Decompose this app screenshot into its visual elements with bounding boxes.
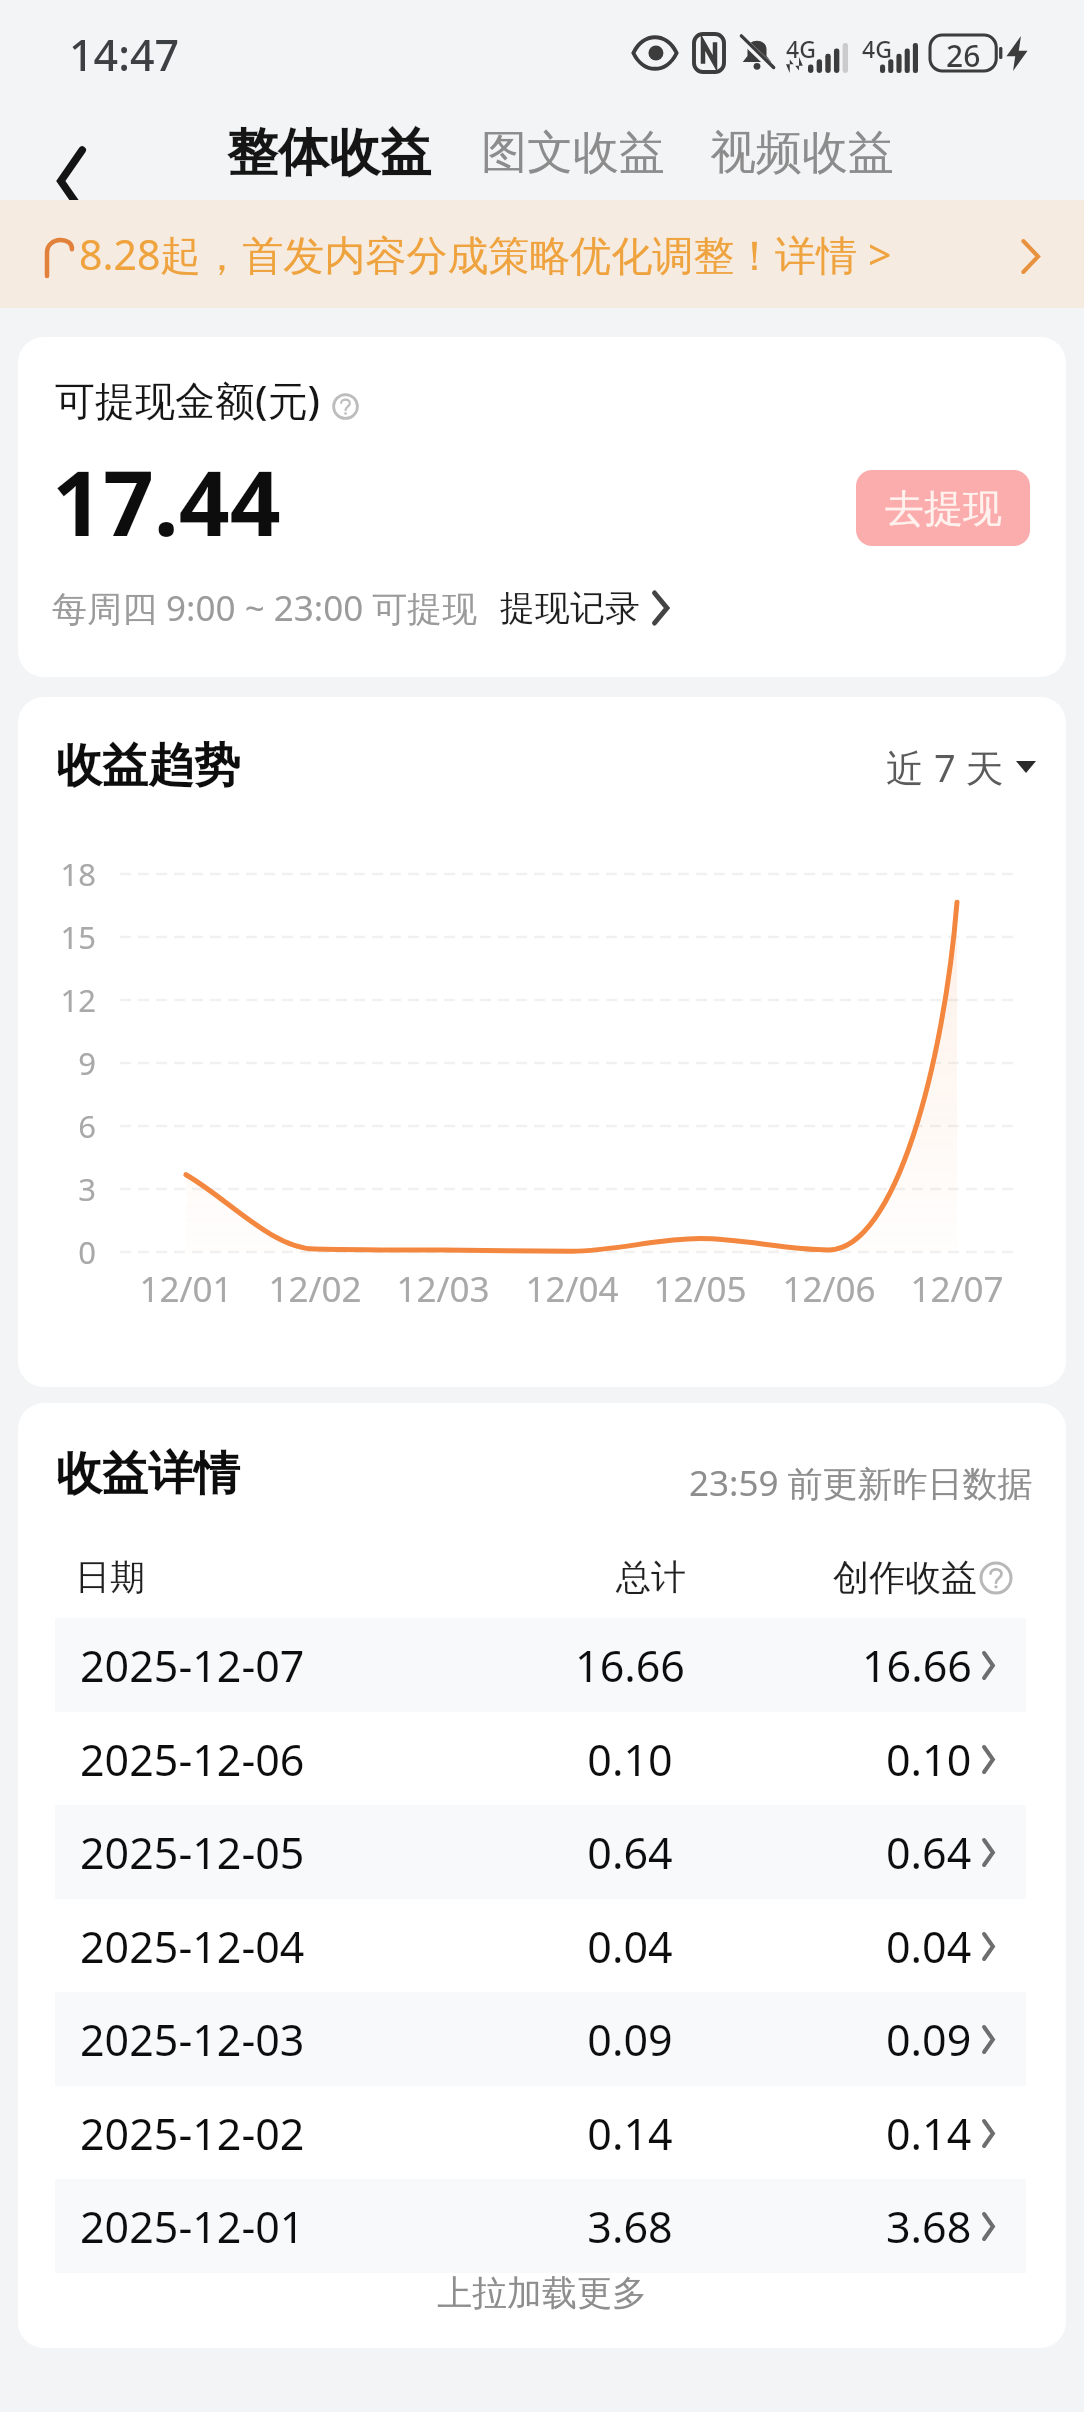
staticText: 图文收益 [481,124,665,182]
button[interactable]: 视频收益 [687,105,919,200]
button[interactable]: 近 7 天 [886,741,1036,793]
button[interactable]: 2025-12-04 [55,1899,1026,1993]
button[interactable]: 提现记录 [500,586,669,630]
staticText: 12/07 [867,1265,1047,1313]
button[interactable]: 2025-12-01 [55,2179,1026,2273]
staticText: 26 [946,35,981,71]
button[interactable]: 2025-12-03 [55,1992,1026,2086]
staticText: 3 [18,1168,96,1210]
button[interactable]: 2025-12-07 [55,1618,1026,1712]
staticText: 总计 [561,1555,741,1599]
staticText: 16.66 [862,1636,972,1695]
staticText: 2025-12-03 [80,2010,305,2069]
staticText: 4G [862,33,892,64]
staticText: 提现记录 [500,586,640,630]
staticText: 12/04 [482,1265,662,1313]
button[interactable]: 2025-12-06 [55,1712,1026,1806]
staticText: 收益趋势 [56,737,240,795]
button[interactable]: 2025-12-05 [55,1805,1026,1899]
staticText: 12/02 [225,1265,405,1313]
staticText: 0.09 [886,2010,972,2069]
staticText: 0.09 [540,2010,720,2069]
staticText: 2025-12-05 [80,1823,305,1882]
staticText: 0.10 [540,1730,720,1789]
button[interactable]: 8.28起，首发内容分成策略优化调整！详情 > [0,200,1084,308]
staticText: 日期 [75,1555,145,1599]
staticText: 创作收益 [833,1555,977,1600]
staticText: 去提现 [885,484,1002,533]
staticText: 6 [18,1105,96,1147]
staticText: 2025-12-07 [80,1636,305,1695]
staticText: 0.10 [886,1730,972,1789]
staticText: 23:59 前更新昨日数据 [689,1459,1033,1507]
staticText: 0.64 [886,1823,972,1882]
staticText: 0.14 [886,2104,972,2163]
staticText: 9 [18,1042,96,1084]
staticText: 4G [786,33,816,64]
staticText: 整体收益 [227,121,431,185]
staticText: 视频收益 [710,124,894,182]
staticText: 0.64 [540,1823,720,1882]
staticText: 3.68 [540,2197,720,2256]
staticText: 收益详情 [56,1445,240,1503]
staticText: 3.68 [886,2197,972,2256]
button[interactable]: 图文收益 [451,105,687,200]
button[interactable]: 整体收益 [207,105,451,200]
button[interactable]: 去提现 [856,470,1030,546]
staticText: 上拉加载更多 [18,2271,1066,2315]
staticText: 0.14 [540,2104,720,2163]
staticText: 12/03 [353,1265,533,1313]
staticText: 近 7 天 [886,741,1004,793]
staticText: 16.66 [540,1636,720,1695]
button[interactable]: Back [14,107,124,200]
staticText: 8.28起，首发内容分成策略优化调整！详情 > [79,226,892,282]
staticText: 可提现金额(元) [55,372,320,427]
button[interactable]: 2025-12-02 [55,2086,1026,2180]
staticText: 18 [18,853,96,895]
staticText: 2025-12-01 [80,2197,305,2256]
staticText: 12 [18,979,96,1021]
staticText: 12/05 [610,1265,790,1313]
staticText: 每周四 9:00 ~ 23:00 可提现 [52,584,478,632]
staticText: 12/01 [96,1265,276,1313]
staticText: 15 [18,916,96,958]
staticText: 17.44 [52,441,281,562]
staticText: 0 [18,1231,96,1273]
staticText: 2025-12-04 [80,1917,305,1976]
staticText: 14:47 [69,25,180,84]
staticText: 2025-12-06 [80,1730,305,1789]
staticText: 0.04 [540,1917,720,1976]
staticText: 2025-12-02 [80,2104,305,2163]
staticText: 12/06 [739,1265,919,1313]
staticText: 0.04 [886,1917,972,1976]
